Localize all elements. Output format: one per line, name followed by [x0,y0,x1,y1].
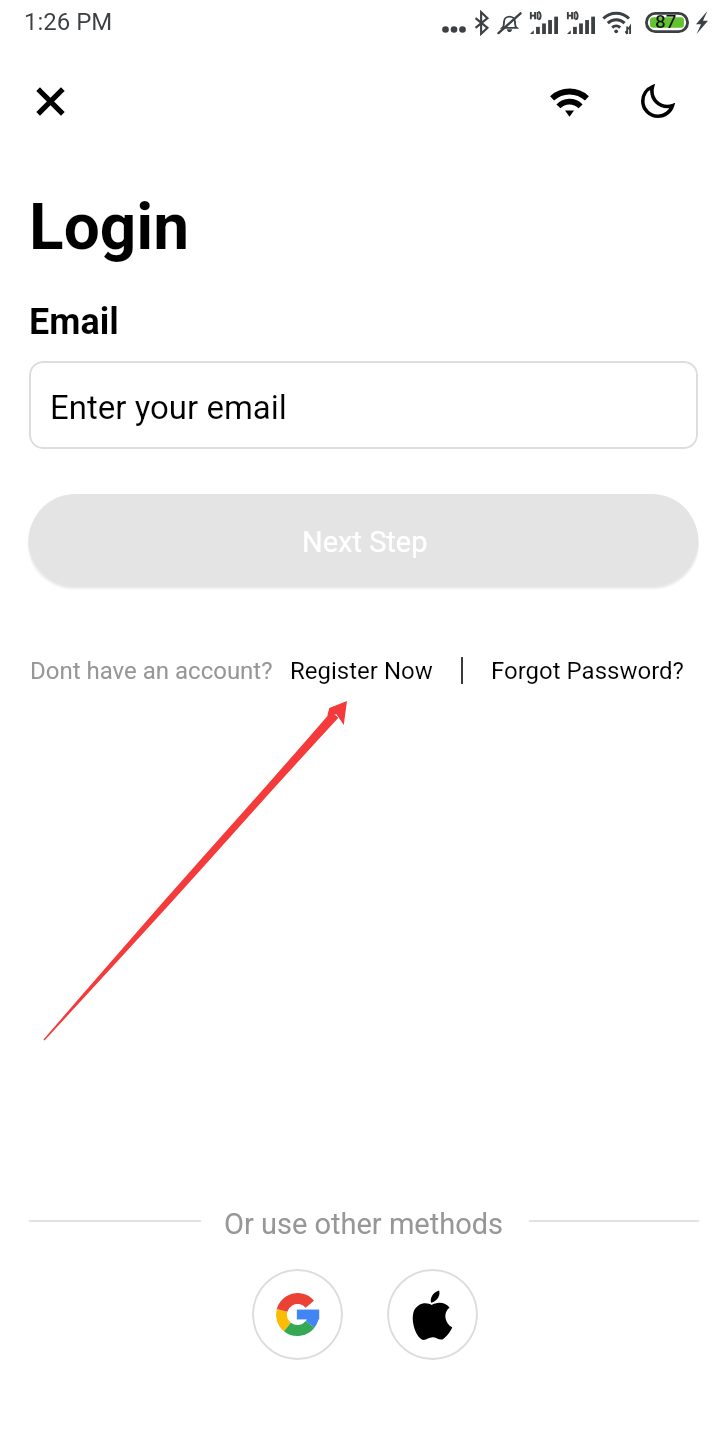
staticText: Register Now [290,657,433,685]
staticText: Or use other methods [224,1207,504,1241]
button[interactable]: Wifi [537,70,601,134]
button[interactable]: Next Step [29,494,698,586]
button[interactable]: Sign in with Google [252,1269,343,1360]
staticText: Login [29,190,190,265]
staticText: 87 [655,10,677,32]
staticText: Dont have an account? [30,657,273,685]
staticText: Next Step [302,525,428,559]
button[interactable]: Dark mode [626,69,690,133]
button[interactable]: Enter your email [29,361,698,449]
button[interactable]: Register Now [280,645,442,697]
staticText: Forgot Password? [491,657,684,685]
button[interactable]: Sign in with Apple [387,1269,478,1360]
button[interactable]: Forgot Password? [481,645,691,697]
staticText: Enter your email [50,388,287,427]
staticText: 1:26 PM [24,8,113,36]
staticText: Email [29,301,119,343]
button[interactable]: Close [20,71,80,131]
